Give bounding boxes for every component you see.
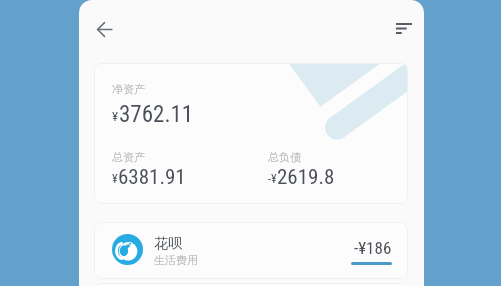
staticText: ¥ bbox=[112, 109, 119, 124]
staticText: 净资产 bbox=[112, 82, 145, 96]
staticText: -¥ bbox=[268, 172, 277, 186]
staticText: 生活费用 bbox=[154, 253, 198, 267]
staticText: ¥ bbox=[112, 172, 118, 186]
staticText: -¥186 bbox=[354, 238, 392, 258]
button[interactable]: 净资产 bbox=[94, 63, 408, 204]
button[interactable] bbox=[94, 283, 408, 286]
button[interactable]: Sort bbox=[388, 12, 420, 44]
button[interactable]: 花呗 bbox=[94, 222, 408, 279]
staticText: 2619.8 bbox=[277, 165, 335, 190]
staticText: 总负债 bbox=[268, 150, 301, 164]
staticText: 6381.91 bbox=[118, 165, 186, 190]
button[interactable]: Back bbox=[88, 13, 120, 45]
staticText: 总资产 bbox=[112, 150, 145, 164]
staticText: 花呗 bbox=[154, 235, 182, 253]
staticText: 3762.11 bbox=[119, 101, 194, 128]
